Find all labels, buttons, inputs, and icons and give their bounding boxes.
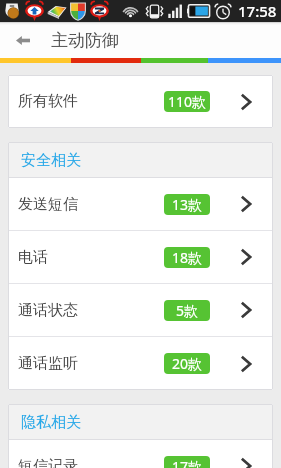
staticText: 18款 — [172, 248, 203, 267]
staticText: 17款 — [172, 457, 203, 468]
staticText: 短信记录 — [18, 457, 78, 468]
staticText: 17:58 — [238, 1, 277, 21]
staticText: 所有软件 — [18, 92, 78, 111]
button[interactable]: 所有软件 — [8, 75, 273, 128]
staticText: 电话 — [18, 248, 48, 267]
staticText: 20款 — [172, 354, 203, 373]
staticText: 主动防御 — [51, 30, 119, 51]
staticText: 通话监听 — [18, 354, 78, 373]
staticText: 发送短信 — [18, 195, 78, 214]
button[interactable]: Back — [10, 27, 36, 53]
staticText: 通话状态 — [18, 301, 78, 320]
button[interactable]: 发送短信 — [8, 178, 273, 231]
button[interactable]: 短信记录 — [8, 440, 273, 468]
staticText: 13款 — [172, 195, 203, 214]
staticText: 隐私相关 — [21, 413, 81, 432]
staticText: 110款 — [168, 92, 207, 111]
staticText: 5款 — [176, 301, 199, 320]
button[interactable]: 通话状态 — [8, 284, 273, 337]
button[interactable]: 通话监听 — [8, 337, 273, 390]
staticText: 安全相关 — [21, 151, 81, 170]
button[interactable]: 电话 — [8, 231, 273, 284]
